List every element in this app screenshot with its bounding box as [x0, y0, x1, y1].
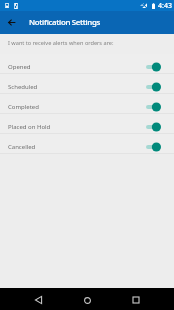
button[interactable]: Recent apps	[125, 289, 147, 310]
staticText: Cancelled	[8, 143, 36, 151]
button[interactable]: Scheduled	[0, 74, 174, 94]
staticText: 4:43	[158, 1, 172, 11]
button[interactable]: Navigate up	[0, 11, 23, 34]
staticText: Placed on Hold	[8, 123, 51, 131]
button[interactable]: Completed	[0, 94, 174, 114]
staticText: Notification Settings	[29, 17, 101, 28]
button[interactable]: Home	[76, 289, 98, 310]
button[interactable]: Cancelled	[0, 134, 174, 154]
staticText: I want to receive alerts when orders are…	[8, 39, 114, 47]
staticText: Scheduled	[8, 83, 38, 91]
staticText: Opened	[8, 63, 31, 71]
button[interactable]: Placed on Hold	[0, 114, 174, 134]
button[interactable]: Opened	[0, 54, 174, 74]
staticText: Completed	[8, 103, 39, 111]
button[interactable]: Back	[27, 289, 49, 310]
